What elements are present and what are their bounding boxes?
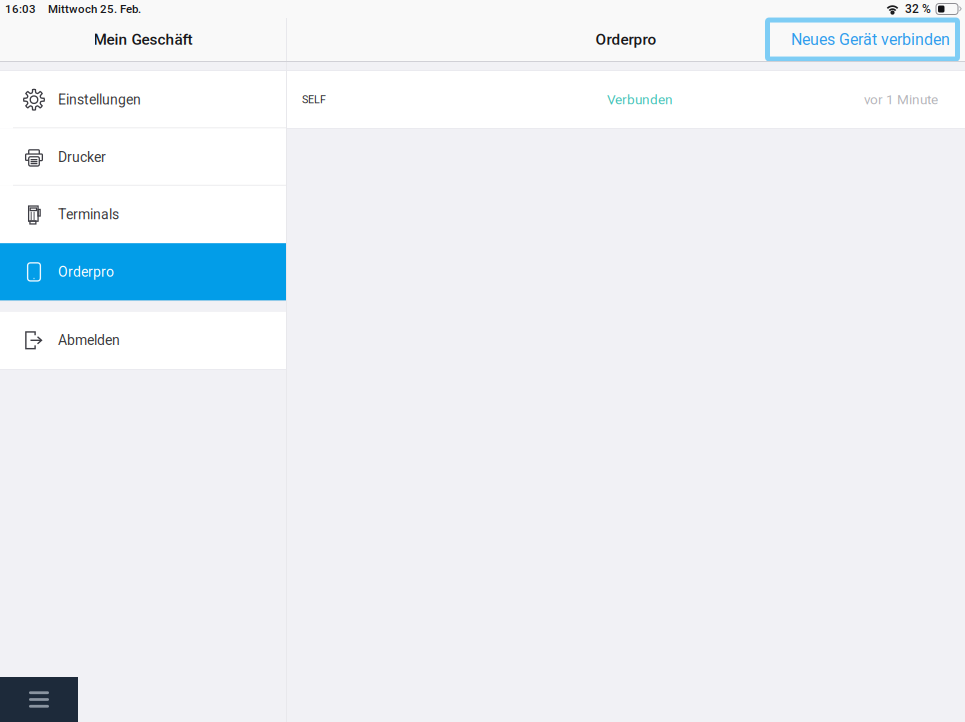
staticText: Orderpro xyxy=(595,30,656,48)
button[interactable]: Orderpro xyxy=(0,243,286,301)
staticText: vor 1 Minute xyxy=(864,91,938,107)
staticText: Orderpro xyxy=(58,264,114,280)
staticText: 32 % xyxy=(905,2,931,16)
staticText: 16:03 xyxy=(5,2,36,16)
button[interactable]: Abmelden xyxy=(0,312,286,369)
staticText: Abmelden xyxy=(58,332,120,348)
button[interactable]: Einstellungen xyxy=(0,71,286,128)
button[interactable]: SELF xyxy=(287,71,965,128)
button[interactable]: Drucker xyxy=(0,128,286,186)
staticText: Einstellungen xyxy=(58,91,141,108)
staticText: Neues Gerät verbinden xyxy=(791,30,950,49)
staticText: Mittwoch 25. Feb. xyxy=(48,2,141,16)
staticText: Terminals xyxy=(58,206,119,223)
staticText: Mein Geschäft xyxy=(93,30,192,48)
staticText: Drucker xyxy=(58,149,106,165)
button[interactable]: Menu xyxy=(0,677,78,722)
staticText: Verbunden xyxy=(607,91,673,107)
staticText: SELF xyxy=(302,93,326,106)
button[interactable]: Neues Gerät verbinden xyxy=(765,17,960,61)
button[interactable]: Terminals xyxy=(0,186,286,243)
